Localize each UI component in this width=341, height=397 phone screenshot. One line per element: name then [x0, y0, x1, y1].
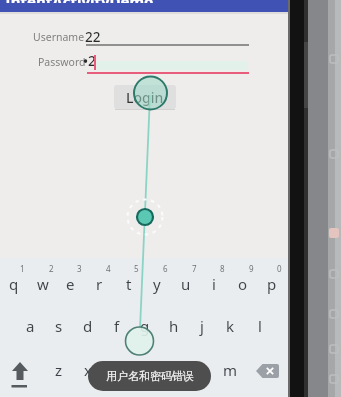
staticText: k [226, 316, 235, 336]
staticText: c [113, 360, 121, 380]
staticText: m [223, 360, 238, 380]
staticText: Login [126, 88, 164, 107]
staticText: 3 [77, 263, 82, 274]
button[interactable]: k [216, 305, 245, 347]
staticText: r [96, 274, 103, 294]
button[interactable]: z [44, 349, 73, 391]
button[interactable]: f [102, 305, 131, 347]
staticText: l [258, 316, 262, 336]
button[interactable]: e [56, 263, 85, 305]
button[interactable]: i [199, 263, 228, 305]
staticText: i [212, 274, 216, 294]
staticText: j [200, 316, 204, 336]
button[interactable]: w [28, 263, 57, 305]
button[interactable]: r [85, 263, 114, 305]
button[interactable]: a [16, 305, 45, 347]
button[interactable]: q [0, 263, 28, 305]
button[interactable]: j [187, 305, 216, 347]
staticText: IntentActivityDemo [5, 0, 154, 3]
button[interactable] [250, 350, 288, 392]
staticText: 4 [106, 263, 111, 274]
button[interactable]: x [73, 349, 102, 391]
button[interactable]: b [159, 349, 188, 391]
staticText: h [169, 316, 179, 336]
button[interactable]: s [44, 305, 73, 347]
staticText: 2 [49, 263, 54, 274]
button[interactable]: h [159, 305, 188, 347]
staticText: b [169, 360, 179, 380]
staticText: x [84, 360, 92, 380]
staticText: w [37, 274, 49, 294]
staticText: 9 [249, 263, 254, 274]
staticText: g [140, 316, 150, 336]
staticText: d [83, 316, 93, 336]
button[interactable]: p [257, 263, 286, 305]
button[interactable]: t [114, 263, 143, 305]
staticText: v [141, 360, 149, 380]
staticText: n [197, 360, 207, 380]
staticText: z [55, 360, 63, 380]
staticText: q [9, 274, 19, 294]
button[interactable]: y [142, 263, 171, 305]
staticText: 22 [85, 28, 101, 46]
staticText: Username [33, 30, 85, 44]
staticText: e [66, 274, 75, 294]
button[interactable]: d [73, 305, 102, 347]
staticText: u [181, 274, 191, 294]
staticText: s [55, 316, 63, 336]
staticText: a [26, 316, 35, 336]
staticText: Password [38, 55, 86, 69]
staticText: y [153, 274, 161, 294]
button[interactable]: v [130, 349, 159, 391]
staticText: 6 [163, 263, 168, 274]
staticText: •2 [83, 52, 96, 70]
button[interactable]: o [228, 263, 257, 305]
staticText: t [126, 274, 132, 294]
staticText: 0 [277, 263, 282, 274]
staticText: p [267, 274, 277, 294]
button[interactable]: m [216, 349, 245, 391]
staticText: 用户名和密码错误 [106, 369, 194, 383]
button[interactable] [2, 350, 42, 392]
button[interactable]: l [245, 305, 274, 347]
staticText: 5 [134, 263, 139, 274]
staticText: 1 [20, 263, 25, 274]
button[interactable]: g [130, 305, 159, 347]
button[interactable]: c [102, 349, 131, 391]
button[interactable]: u [171, 263, 200, 305]
button[interactable]: n [187, 349, 216, 391]
staticText: 7 [192, 263, 197, 274]
staticText: 8 [220, 263, 225, 274]
staticText: f [114, 316, 120, 336]
button[interactable]: Login [114, 85, 176, 109]
staticText: o [238, 274, 248, 294]
